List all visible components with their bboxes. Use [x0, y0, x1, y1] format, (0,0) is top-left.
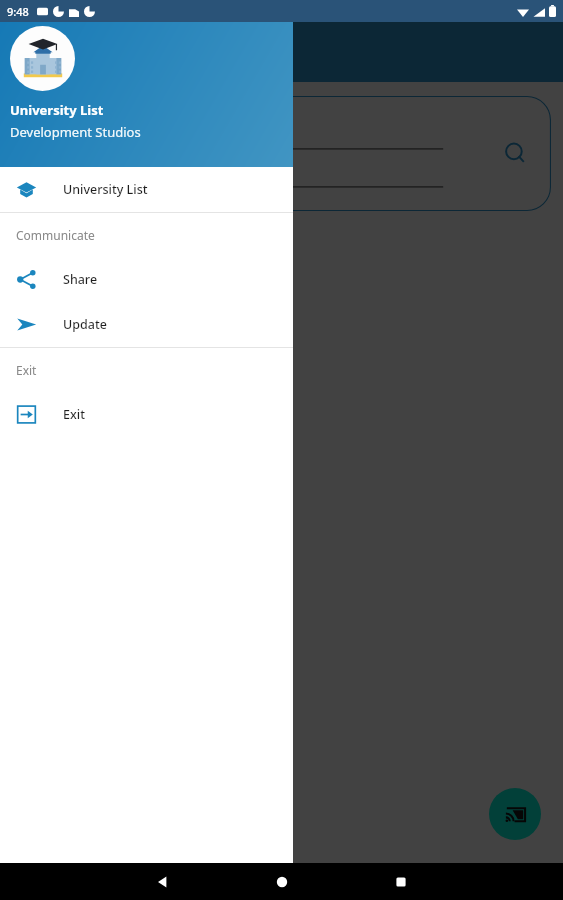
staticText: Exit: [63, 406, 85, 423]
button[interactable]: Search: [12, 96, 551, 211]
staticText: Share: [63, 271, 98, 288]
button[interactable]: Cast: [489, 788, 541, 840]
button[interactable]: Update: [0, 302, 293, 347]
button[interactable]: Back: [152, 872, 172, 892]
staticText: Development Studios: [10, 123, 141, 141]
button[interactable]: Share: [0, 257, 293, 302]
button[interactable]: Search: [503, 141, 529, 167]
staticText: Exit: [16, 362, 37, 378]
staticText: University List: [10, 101, 104, 119]
staticText: University List: [63, 181, 148, 198]
staticText: Communicate: [16, 227, 95, 243]
button[interactable]: University List: [0, 0, 293, 167]
staticText: Update: [63, 316, 107, 333]
staticText: 9:48: [7, 4, 29, 19]
button[interactable]: Recents: [391, 872, 411, 892]
button[interactable]: Home: [272, 872, 292, 892]
button[interactable]: University List: [0, 167, 293, 212]
button[interactable]: Exit: [0, 392, 293, 437]
